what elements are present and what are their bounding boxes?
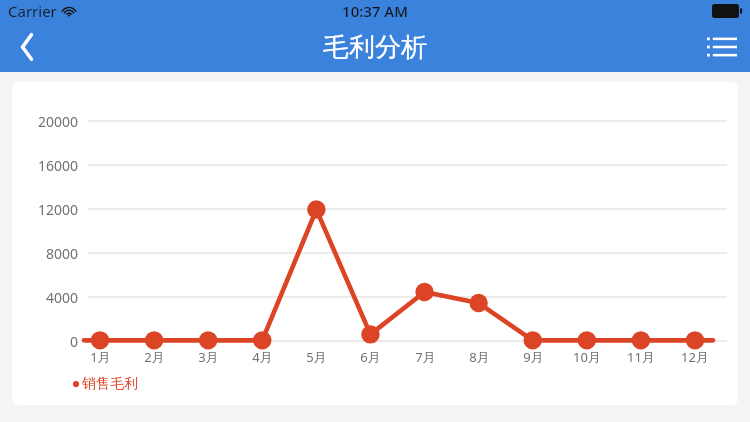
staticText: 0 [69, 332, 78, 351]
staticText: 6月 [360, 348, 381, 366]
staticText: 8000 [45, 244, 78, 263]
staticText: 1月 [90, 348, 111, 366]
button[interactable]: Menu [694, 22, 750, 72]
staticText: 4月 [252, 348, 273, 366]
staticText: 3月 [198, 348, 219, 366]
staticText: 4000 [45, 288, 78, 307]
staticText: 20000 [37, 112, 78, 131]
staticText: 8月 [469, 348, 490, 366]
staticText: 9月 [523, 348, 544, 366]
staticText: 毛利分析 [323, 31, 427, 64]
staticText: 11月 [627, 348, 655, 366]
staticText: 2月 [144, 348, 165, 366]
staticText: Carrier [8, 1, 57, 21]
staticText: 10:37 AM [342, 1, 408, 21]
staticText: 12月 [681, 348, 709, 366]
staticText: 销售毛利 [82, 375, 138, 393]
staticText: 5月 [306, 348, 327, 366]
staticText: 10月 [573, 348, 601, 366]
staticText: 12000 [37, 200, 78, 219]
staticText: 16000 [37, 156, 78, 175]
button[interactable]: Back [0, 22, 54, 72]
staticText: 7月 [415, 348, 436, 366]
